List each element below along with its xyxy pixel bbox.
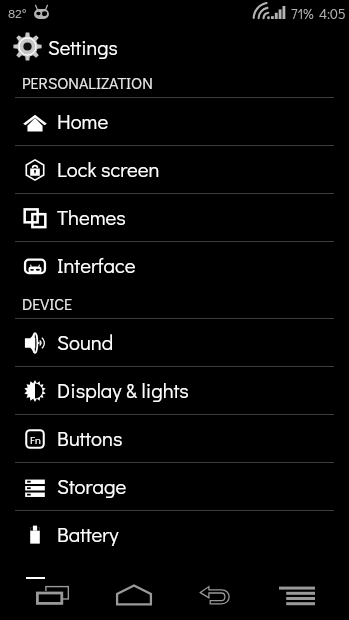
button[interactable]: Themes [0,194,349,241]
button[interactable]: Interface [0,242,349,289]
button[interactable]: Storage [0,463,349,510]
staticText: Lock screen [57,156,160,183]
button[interactable]: Back [185,573,245,617]
staticText: Interface [57,252,136,279]
staticText: 4:05 [319,4,346,22]
button[interactable]: Battery [0,511,349,558]
staticText: DEVICE [22,293,72,314]
button[interactable]: Sound [0,319,349,366]
staticText: Battery [57,521,119,548]
staticText: 82° [8,4,27,21]
staticText: Settings [48,34,118,60]
button[interactable]: Display & lights [0,367,349,414]
button[interactable]: Recent apps [22,573,82,617]
button[interactable]: Lock screen [0,146,349,193]
staticText: Fn [30,432,41,446]
button[interactable]: Menu [267,573,327,617]
staticText: PERSONALIZATION [22,72,153,93]
staticText: Storage [57,473,127,500]
button[interactable]: Fn [0,415,349,462]
staticText: Display & lights [57,377,189,404]
staticText: Home [57,108,109,135]
staticText: 71% [291,4,314,22]
staticText: Themes [57,204,126,231]
staticText: Sound [57,329,114,356]
staticText: Buttons [57,425,123,452]
button[interactable]: Home [0,98,349,145]
button[interactable]: Home [104,573,164,617]
